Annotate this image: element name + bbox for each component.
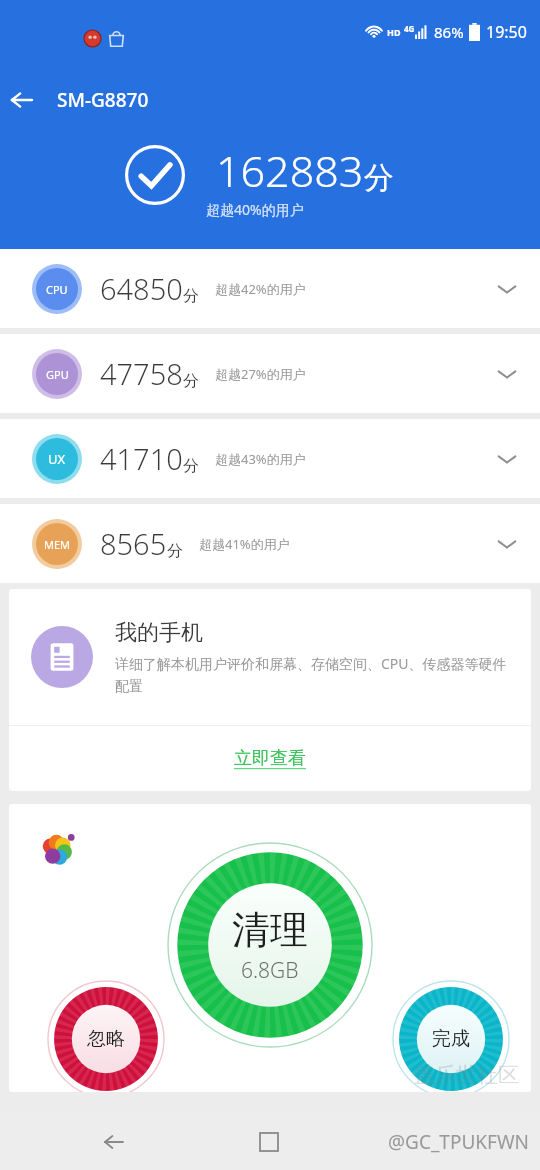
staticText: 超越42%的用户 xyxy=(215,280,306,298)
staticText: MEM xyxy=(44,537,71,552)
button[interactable]: Home xyxy=(404,1120,448,1164)
staticText: 分 xyxy=(167,541,183,561)
button[interactable]: CPU xyxy=(0,249,540,328)
staticText: 162883 xyxy=(216,141,364,200)
staticText: 超越43%的用户 xyxy=(215,450,306,468)
staticText: 8565 xyxy=(100,524,167,563)
staticText: 忽略 xyxy=(87,1027,125,1051)
button[interactable]: 清理 xyxy=(167,842,373,1048)
staticText: SM-G8870 xyxy=(57,87,149,113)
button[interactable]: GPU xyxy=(0,334,540,413)
staticText: 超越40%的用户 xyxy=(206,200,304,219)
button[interactable]: 立即查看 xyxy=(9,726,531,791)
staticText: HD xyxy=(387,26,401,38)
button[interactable]: 完成 xyxy=(392,980,510,1092)
button[interactable]: 忽略 xyxy=(47,980,165,1092)
button[interactable]: Back xyxy=(0,78,44,122)
button[interactable]: Recent apps xyxy=(247,1120,291,1164)
staticText: 19:50 xyxy=(486,21,527,43)
staticText: 我的手机 xyxy=(115,619,203,647)
staticText: 超越41%的用户 xyxy=(199,535,290,553)
staticText: 立即查看 xyxy=(234,747,306,770)
staticText: 41710 xyxy=(100,439,183,478)
staticText: 超越27%的用户 xyxy=(215,365,306,383)
staticText: 清理 xyxy=(232,906,308,954)
staticText: 47758 xyxy=(100,354,183,393)
staticText: 分 xyxy=(183,286,199,306)
staticText: 6.8GB xyxy=(241,956,299,985)
staticText: @GC_TPUKFWN xyxy=(388,1129,530,1155)
button[interactable]: 我的手机 xyxy=(9,589,531,725)
button[interactable]: MEM xyxy=(0,504,540,583)
staticText: 86% xyxy=(434,22,464,42)
button[interactable]: Back xyxy=(92,1120,136,1164)
staticText: 64850 xyxy=(100,269,183,308)
staticText: 4G xyxy=(404,23,415,34)
staticText: 分 xyxy=(183,456,199,476)
staticText: GPU xyxy=(46,367,69,382)
staticText: 详细了解本机用户评价和屏幕、存储空间、CPU、传感器等硬件配置 xyxy=(115,654,513,696)
staticText: UX xyxy=(48,450,66,468)
staticText: CPU xyxy=(46,282,68,297)
staticText: 分 xyxy=(364,159,394,197)
staticText: 完成 xyxy=(432,1027,470,1051)
staticText: 分 xyxy=(183,371,199,391)
staticText: 盖乐世社区 xyxy=(414,1062,519,1088)
button[interactable]: UX xyxy=(0,419,540,498)
